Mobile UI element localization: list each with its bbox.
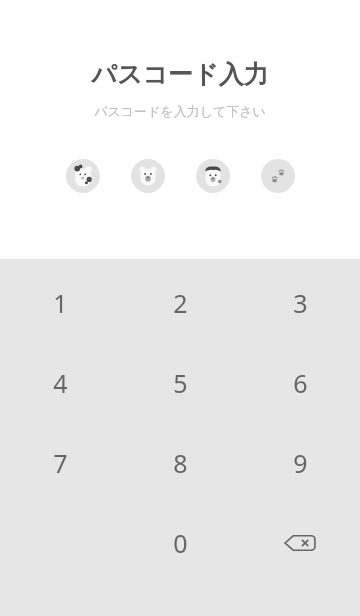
button[interactable]: 1 [0, 263, 120, 343]
staticText: 5 [173, 366, 188, 400]
other: Passcode digit 3 [196, 159, 230, 193]
button[interactable]: 6 [240, 343, 360, 423]
button[interactable]: 4 [0, 343, 120, 423]
staticText: パスコード入力 [91, 59, 269, 90]
staticText: 4 [53, 366, 68, 400]
button[interactable]: Delete [240, 503, 360, 583]
button[interactable]: 9 [240, 423, 360, 503]
staticText: 3 [293, 286, 308, 320]
staticText: 2 [173, 286, 188, 320]
button[interactable]: 8 [120, 423, 240, 503]
button[interactable]: 5 [120, 343, 240, 423]
other: Passcode digit 1 [66, 159, 100, 193]
button[interactable]: 2 [120, 263, 240, 343]
staticText: 7 [53, 446, 68, 480]
button[interactable]: 3 [240, 263, 360, 343]
staticText: 9 [293, 446, 308, 480]
staticText: 6 [293, 366, 308, 400]
button[interactable]: 7 [0, 423, 120, 503]
staticText: 8 [173, 446, 188, 480]
staticText: 1 [53, 286, 68, 320]
staticText: 0 [173, 526, 188, 560]
other: Passcode digit 4 [261, 159, 295, 193]
other: Passcode digit 2 [131, 159, 165, 193]
staticText: パスコードを入力して下さい [94, 103, 266, 119]
button[interactable]: 0 [120, 503, 240, 583]
